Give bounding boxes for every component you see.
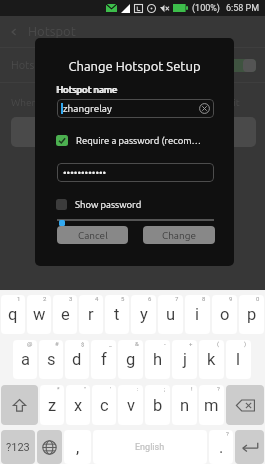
button[interactable]: 3: [53, 295, 77, 334]
staticText: Change: [162, 230, 196, 241]
staticText: &: [135, 340, 139, 347]
staticText: When hotspot is on, other devices can co…: [11, 97, 240, 108]
staticText: y: [140, 305, 148, 324]
button[interactable]: ••••••••••••: [57, 163, 214, 182]
staticText: English: [135, 442, 165, 453]
other: Clear text: [199, 103, 210, 114]
staticText: o: [220, 305, 230, 324]
button[interactable]: ": [66, 385, 90, 425]
staticText: zhangrelay: [63, 103, 112, 114]
staticText: 6: [148, 295, 152, 302]
staticText: _: [109, 340, 112, 347]
staticText: ,: [76, 438, 80, 457]
staticText: a: [21, 350, 30, 369]
staticText: z: [48, 396, 57, 415]
button[interactable]: 8: [185, 295, 210, 334]
button[interactable]: ?: [199, 385, 224, 425]
button[interactable]: ?123: [1, 430, 35, 464]
staticText: u: [166, 305, 176, 324]
staticText: ?: [217, 385, 220, 392]
button[interactable]: ?: [209, 430, 233, 464]
staticText: p: [247, 305, 257, 324]
button[interactable]: ': [92, 385, 116, 425]
staticText: Hotspot: [28, 24, 76, 39]
button[interactable]: 4: [79, 295, 103, 334]
staticText: 6:58 PM: [226, 3, 260, 14]
button[interactable]: *: [40, 385, 64, 425]
button[interactable]: &: [118, 340, 143, 379]
staticText: Cancel: [78, 230, 108, 241]
button[interactable]: 1: [1, 295, 25, 334]
button[interactable]: 0: [239, 295, 264, 334]
button[interactable]: ): [226, 340, 251, 379]
staticText: v: [127, 396, 135, 415]
staticText: h: [153, 350, 163, 369]
button[interactable]: (: [199, 340, 224, 379]
staticText: +: [189, 340, 193, 347]
staticText: f: [101, 350, 107, 369]
staticText: 4: [95, 295, 99, 302]
button[interactable]: zhangrelay: [57, 99, 214, 118]
button[interactable]: Shift: [1, 385, 38, 425]
staticText: i: [195, 305, 200, 324]
staticText: Hotspot: [11, 59, 52, 71]
button[interactable]: +: [172, 340, 197, 379]
staticText: :: [137, 385, 139, 392]
staticText: s: [47, 350, 56, 369]
staticText: ": [84, 385, 86, 392]
staticText: (100%): [192, 3, 220, 14]
staticText: Hotspot name: [57, 84, 118, 95]
staticText: n: [180, 396, 190, 415]
button[interactable]: Cancel: [57, 226, 128, 244]
staticText: r: [88, 305, 94, 324]
button[interactable]: English: [93, 430, 207, 464]
staticText: ?123: [6, 441, 30, 454]
button[interactable]: 5: [105, 295, 129, 334]
button[interactable]: -: [145, 340, 170, 379]
staticText: g: [126, 350, 136, 369]
staticText: c: [100, 396, 109, 415]
staticText: Require a password (recom…: [76, 135, 201, 146]
staticText: *: [57, 385, 60, 392]
button[interactable]: Show password: [56, 199, 142, 210]
button[interactable]: :: [118, 385, 143, 425]
button[interactable]: Enter: [235, 430, 264, 464]
staticText: $: [81, 340, 85, 347]
button[interactable]: !: [172, 385, 197, 425]
staticText: 9: [229, 295, 233, 302]
button[interactable]: Change: [143, 226, 215, 244]
button[interactable]: @: [13, 340, 37, 379]
button[interactable]: Backspace: [226, 385, 264, 425]
button[interactable]: $: [65, 340, 89, 379]
staticText: 1: [17, 295, 21, 302]
button[interactable]: Change language: [37, 430, 62, 464]
button[interactable]: ,: [64, 430, 91, 464]
staticText: Show password: [75, 199, 142, 210]
staticText: 0: [256, 295, 260, 302]
staticText: !: [191, 385, 193, 392]
button[interactable]: Require a password (recom…: [56, 135, 201, 146]
staticText: x: [74, 396, 83, 415]
staticText: t: [114, 305, 120, 324]
staticText: @: [27, 340, 33, 347]
button[interactable]: _: [91, 340, 116, 379]
button[interactable]: 2: [27, 295, 51, 334]
staticText: #: [55, 340, 59, 347]
button[interactable]: 7: [158, 295, 183, 334]
staticText: ?: [226, 430, 229, 437]
staticText: .: [219, 438, 224, 457]
staticText: w: [33, 305, 46, 324]
staticText: -: [164, 340, 166, 347]
staticText: 7: [175, 295, 179, 302]
staticText: 5: [121, 295, 125, 302]
staticText: ••••••••••••: [63, 167, 107, 178]
button[interactable]: 9: [212, 295, 237, 334]
staticText: 8: [202, 295, 206, 302]
button[interactable]: ;: [145, 385, 170, 425]
staticText: b: [153, 396, 163, 415]
staticText: m: [204, 396, 219, 415]
button[interactable]: 6: [131, 295, 156, 334]
staticText: Change Hotspot Setup: [35, 59, 234, 74]
button[interactable]: #: [39, 340, 63, 379]
staticText: d: [72, 350, 82, 369]
